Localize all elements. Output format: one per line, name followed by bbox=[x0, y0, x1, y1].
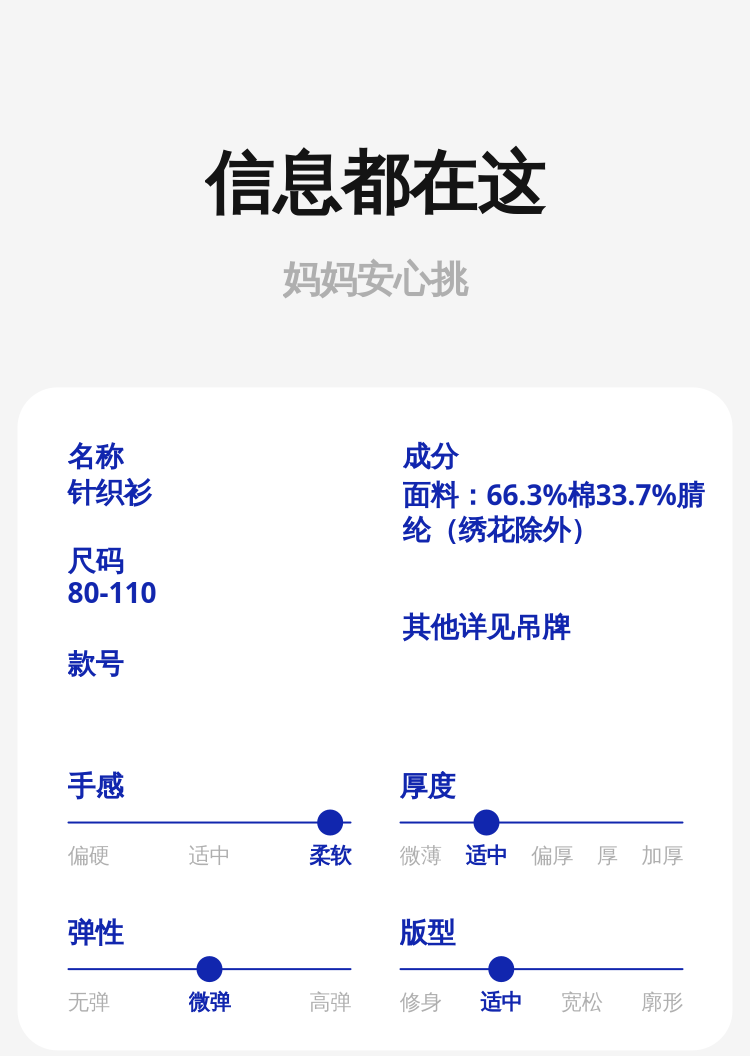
staticText: 适中 bbox=[480, 989, 522, 1015]
staticText: 无弹 bbox=[68, 989, 110, 1015]
staticText: 妈妈安心挑 bbox=[282, 256, 467, 302]
staticText: 80-110 bbox=[67, 574, 156, 611]
staticText: 廓形 bbox=[641, 989, 683, 1015]
button[interactable]: 厚度 bbox=[399, 769, 683, 869]
staticText: 面料：66.3%棉33.7%腈纶（绣花除外） bbox=[402, 476, 704, 547]
staticText: 款号 bbox=[67, 647, 123, 681]
button[interactable]: 手感 bbox=[67, 769, 351, 869]
staticText: 手感 bbox=[67, 769, 123, 803]
staticText: 尺码 bbox=[67, 544, 123, 579]
staticText: 其他详见吊牌 bbox=[402, 610, 570, 645]
staticText: 版型 bbox=[399, 916, 455, 950]
staticText: 弹性 bbox=[67, 916, 123, 950]
staticText: 厚度 bbox=[399, 769, 455, 803]
staticText: 适中 bbox=[465, 842, 507, 869]
staticText: 微弹 bbox=[188, 989, 230, 1015]
staticText: 厚 bbox=[597, 842, 618, 869]
staticText: 宽松 bbox=[561, 989, 603, 1015]
button[interactable]: 版型 bbox=[399, 916, 683, 1015]
staticText: 偏厚 bbox=[531, 842, 573, 869]
staticText: 针织衫 bbox=[67, 476, 151, 510]
staticText: 微薄 bbox=[400, 842, 442, 869]
staticText: 成分 bbox=[402, 439, 458, 474]
staticText: 柔软 bbox=[309, 842, 351, 869]
staticText: 偏硬 bbox=[68, 842, 110, 869]
staticText: 名称 bbox=[67, 439, 123, 474]
staticText: 加厚 bbox=[641, 842, 683, 869]
button[interactable]: 弹性 bbox=[67, 916, 351, 1015]
staticText: 修身 bbox=[400, 989, 442, 1015]
staticText: 适中 bbox=[188, 842, 230, 869]
staticText: 信息都在这 bbox=[205, 142, 545, 225]
staticText: 高弹 bbox=[309, 989, 351, 1015]
